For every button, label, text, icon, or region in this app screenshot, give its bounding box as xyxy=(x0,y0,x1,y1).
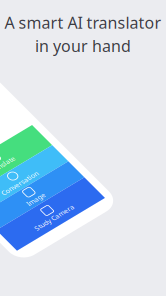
staticText: in your hand xyxy=(35,35,131,56)
staticText: A smart AI translator xyxy=(4,12,161,33)
